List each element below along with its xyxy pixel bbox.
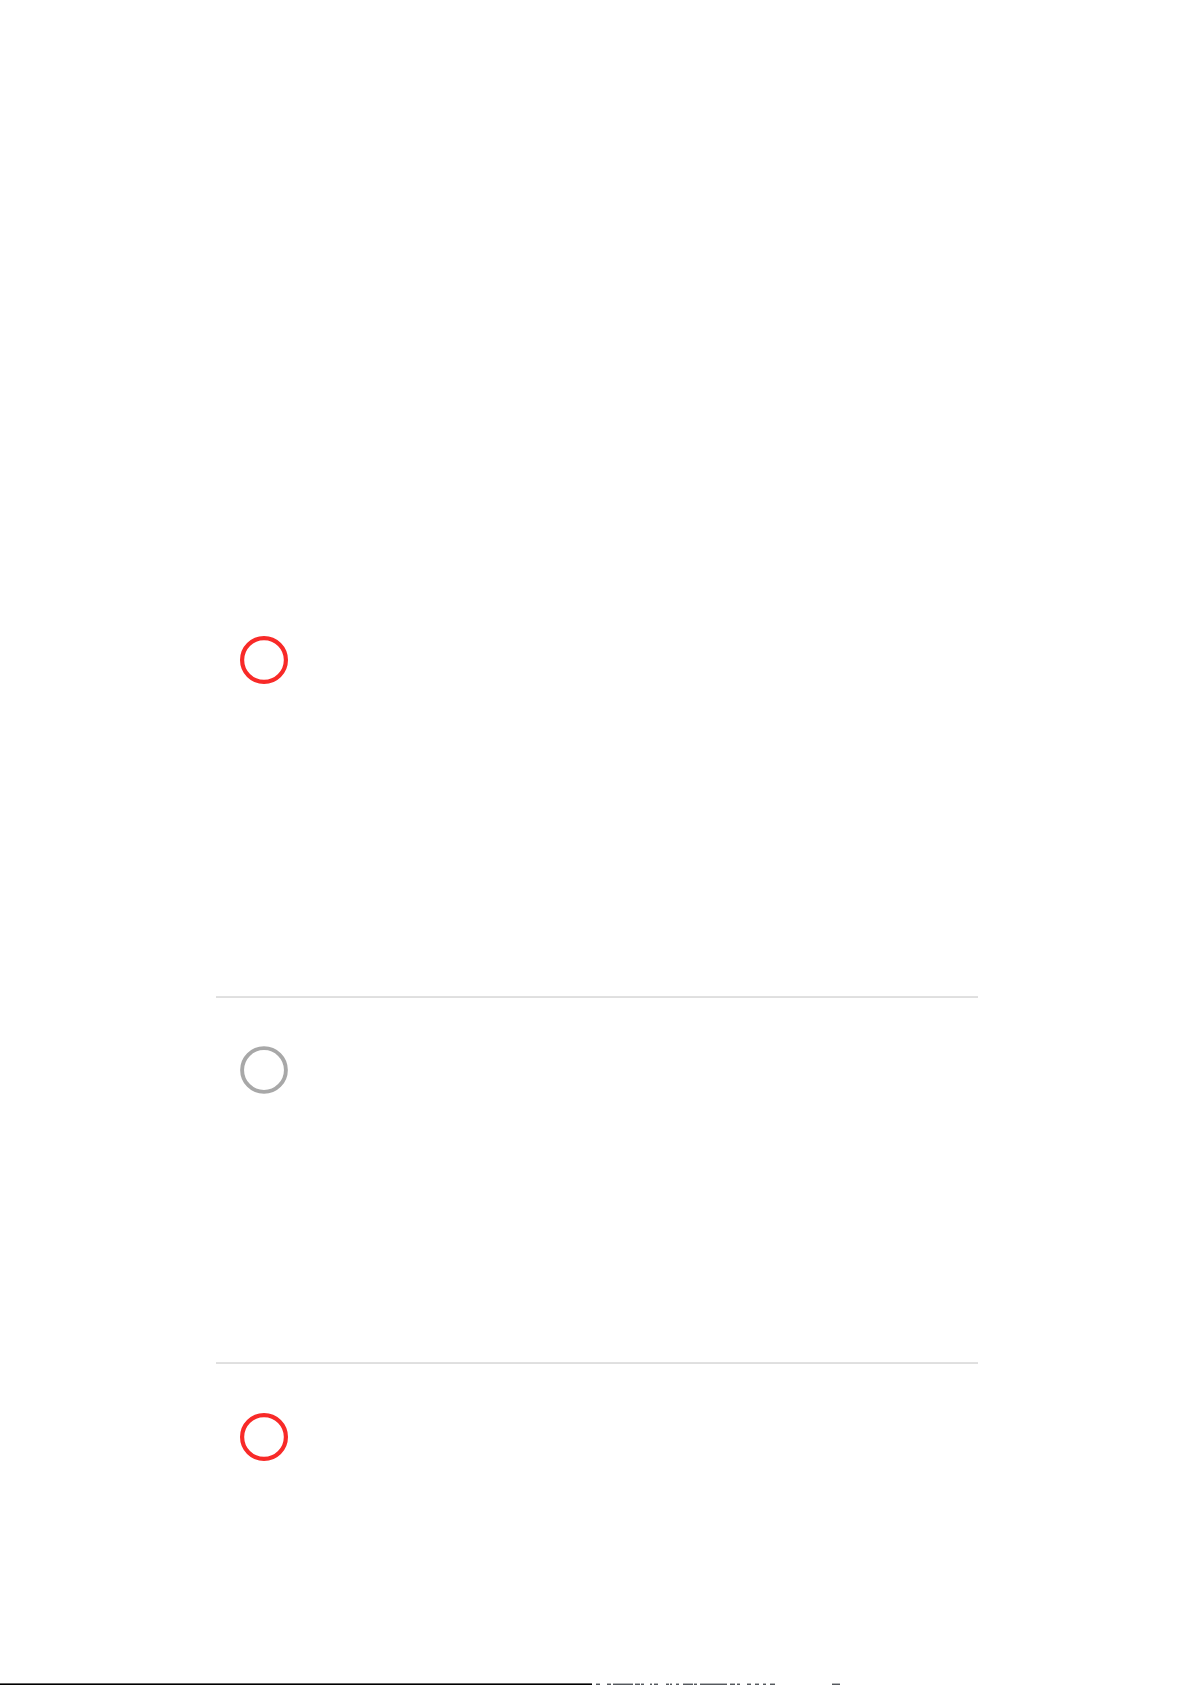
- button[interactable]: Option one, selected: [0, 587, 1191, 996]
- button[interactable]: Option three, selected: [0, 1364, 1191, 1685]
- button[interactable]: Continue: [0, 1683, 1191, 1685]
